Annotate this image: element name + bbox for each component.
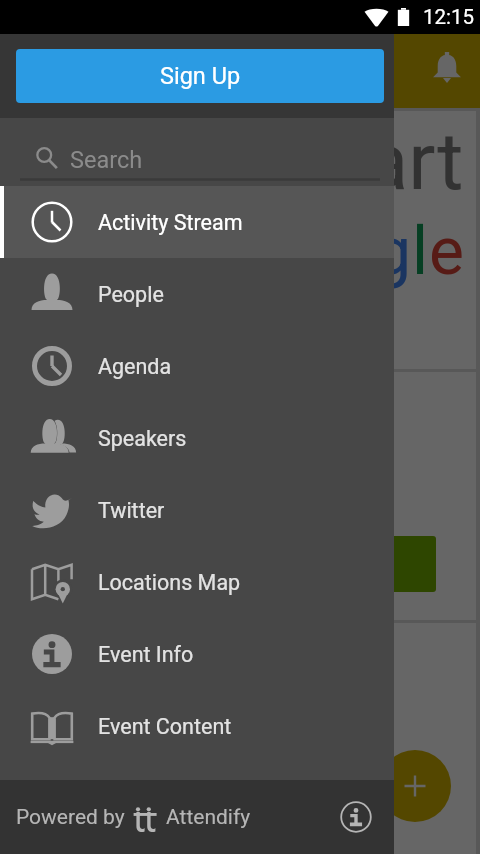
button[interactable]: Search — [0, 118, 394, 186]
button[interactable]: About — [332, 793, 380, 841]
staticText: Sign Up — [160, 62, 241, 90]
staticText: People — [98, 282, 164, 307]
button[interactable]: Add — [379, 750, 451, 822]
staticText: Activity Stream — [98, 210, 243, 235]
staticText: Attendify — [166, 805, 251, 830]
staticText: Twitter — [98, 498, 165, 523]
staticText: l — [412, 213, 429, 290]
button[interactable]: Speakers — [0, 402, 394, 474]
staticText: Event Info — [98, 642, 194, 667]
button[interactable]: Event Content — [0, 690, 394, 762]
staticText: g — [374, 213, 412, 290]
staticText: G — [253, 213, 298, 290]
staticText: Locations Map — [98, 570, 241, 595]
button[interactable]: Activity Stream — [0, 186, 394, 258]
staticText: o — [336, 213, 374, 290]
staticText: Speakers — [98, 426, 187, 451]
staticText: Powered by — [16, 805, 125, 830]
staticText: 12:15 — [423, 5, 475, 29]
button[interactable]: Sign Up — [16, 49, 384, 103]
staticText: Agenda — [98, 354, 172, 379]
button[interactable]: Locations Map — [0, 546, 394, 618]
staticText: Search — [70, 146, 143, 174]
staticText: o — [298, 213, 336, 290]
button[interactable]: People — [0, 258, 394, 330]
staticText: Event Content — [98, 714, 232, 739]
button[interactable] — [328, 536, 436, 592]
button[interactable]: Powered by — [0, 780, 394, 854]
button[interactable]: Twitter — [0, 474, 394, 546]
button[interactable]: Notifications — [423, 47, 471, 95]
staticText: e — [429, 213, 464, 290]
staticText: Start — [291, 115, 464, 209]
button[interactable]: Event Info — [0, 618, 394, 690]
button[interactable]: Agenda — [0, 330, 394, 402]
